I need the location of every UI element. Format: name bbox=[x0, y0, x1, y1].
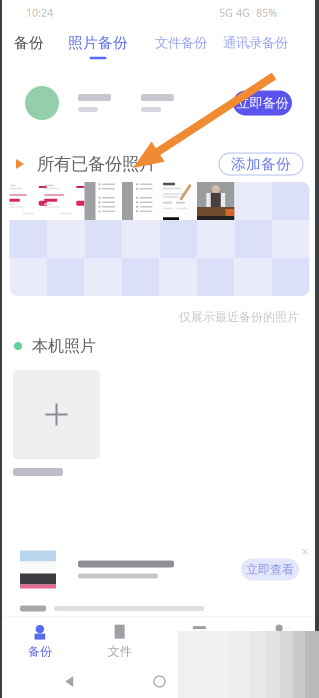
button[interactable]: Photo 3 bbox=[84, 182, 122, 220]
staticText: 仅展示最近备份的照片 bbox=[179, 310, 299, 324]
staticText: 通讯录备份 bbox=[223, 35, 288, 51]
button[interactable]: 立即查看 bbox=[241, 558, 299, 580]
button[interactable]: 文件备份 bbox=[155, 26, 207, 51]
staticText: 文件备份 bbox=[155, 35, 207, 51]
button[interactable]: Photo 5 bbox=[159, 182, 197, 220]
staticText: 本机照片 bbox=[32, 336, 96, 356]
staticText: 立即查看 bbox=[246, 562, 294, 577]
staticText: 我的 bbox=[267, 644, 291, 659]
button[interactable]: Home bbox=[139, 666, 179, 696]
button[interactable]: 照片备份 bbox=[68, 26, 128, 59]
button[interactable]: Back bbox=[50, 666, 90, 696]
button[interactable]: Add album bbox=[13, 370, 100, 459]
button[interactable]: 文件 bbox=[80, 617, 160, 665]
button[interactable]: Recents bbox=[229, 666, 269, 696]
button[interactable]: 通讯录备份 bbox=[223, 26, 288, 51]
staticText: 所有已备份照片 bbox=[37, 153, 156, 175]
staticText: 10:24 bbox=[26, 5, 53, 20]
staticText: 立即备份 bbox=[236, 95, 288, 111]
button[interactable]: Photo 2 bbox=[47, 182, 84, 220]
staticText: 照片备份 bbox=[68, 34, 128, 52]
staticText: 备份 bbox=[28, 644, 52, 659]
button[interactable]: 我的 bbox=[239, 617, 319, 665]
button[interactable]: 备份 bbox=[0, 617, 80, 665]
staticText: 添加备份 bbox=[231, 155, 291, 173]
button[interactable]: 立即备份 bbox=[233, 90, 292, 115]
button[interactable]: Photo 6 bbox=[197, 182, 234, 220]
staticText: 文件 bbox=[108, 644, 132, 659]
staticText: 5G 4G 85% bbox=[219, 5, 277, 20]
staticText: 备份 bbox=[14, 34, 44, 52]
button[interactable]: Photo 1 bbox=[9, 182, 47, 220]
button[interactable]: Photo 4 bbox=[122, 182, 159, 220]
staticText: × bbox=[301, 543, 308, 559]
button[interactable]: Close ad bbox=[298, 544, 312, 558]
button[interactable]: 传输 bbox=[159, 617, 239, 665]
button[interactable]: 添加备份 bbox=[219, 153, 303, 175]
